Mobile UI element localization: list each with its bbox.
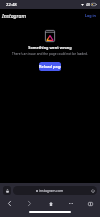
button[interactable]: Reload page — [39, 62, 61, 71]
button[interactable]: instagram.com — [13, 186, 97, 195]
button[interactable]: Site information — [3, 186, 11, 195]
button[interactable]: Back — [5, 199, 14, 208]
staticText: Log in — [85, 13, 96, 18]
button[interactable]: Reload — [89, 187, 97, 195]
button[interactable]: Forward — [25, 199, 34, 208]
staticText: instagram.com — [39, 188, 64, 193]
staticText: 48 — [86, 2, 90, 7]
staticText: Instagram — [2, 12, 27, 19]
button[interactable]: Log in — [81, 10, 100, 21]
button[interactable]: Home — [46, 199, 55, 208]
button[interactable]: Tabs — [86, 199, 95, 208]
staticText: Something went wrong — [28, 45, 72, 50]
staticText: 22:48 — [6, 2, 17, 8]
staticText: There's an issue and the page could not … — [12, 52, 88, 56]
staticText: Reload page — [39, 64, 61, 69]
button[interactable]: More options — [66, 199, 75, 208]
